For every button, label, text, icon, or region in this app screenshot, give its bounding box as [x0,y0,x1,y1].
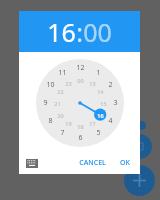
button[interactable]: Action [137,121,146,130]
staticText: 16 [47,15,76,49]
staticText: CANCEL [79,158,106,168]
staticText: 19 [65,120,72,127]
button[interactable]: 16 [19,11,140,52]
staticText: 10 [46,80,55,90]
staticText: 00 [83,15,112,49]
staticText: 6 [78,133,83,143]
staticText: 2 [108,80,113,90]
staticText: 5 [96,128,101,138]
staticText: 18 [77,123,84,130]
staticText: 1 [96,68,101,78]
staticText: 14 [97,88,104,95]
button[interactable]: Add [124,165,155,196]
staticText: 23 [65,80,72,87]
staticText: 00 [77,77,84,84]
button[interactable]: OK [117,155,133,171]
staticText: : [76,15,83,49]
staticText: 12 [76,63,85,73]
staticText: 15 [100,100,107,107]
staticText: 21 [54,100,61,107]
staticText: 4 [108,116,113,126]
staticText: 16 [97,112,104,119]
staticText: 17 [89,120,96,127]
staticText: 22 [57,88,64,95]
staticText: 3 [113,98,118,108]
staticText: 20 [57,112,64,119]
button[interactable]: CANCEL [76,155,109,171]
staticText: 8 [48,116,53,126]
staticText: 13 [89,80,96,87]
staticText: 7 [60,128,65,138]
button[interactable]: Secondary action [127,134,152,159]
staticText: 11 [58,68,67,78]
staticText: OK [120,158,130,168]
staticText: 9 [43,98,48,108]
button[interactable]: Switch to text input [26,159,38,168]
